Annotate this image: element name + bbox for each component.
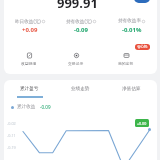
staticText: 昨日收益(元) [15,18,41,24]
button[interactable]: 我的定投 [110,53,142,66]
staticText: 交易记录 [68,61,84,66]
staticText: -0.09 [40,104,51,110]
button[interactable]: 净值估算 [106,86,157,96]
staticText: +0.00 [137,121,147,126]
button[interactable]: 持有收益(元) [55,18,106,34]
button[interactable]: 业绩走势 [55,86,106,96]
button[interactable]: 累计盈亏 [4,86,55,98]
button[interactable]: 收益明细 [13,53,45,66]
button[interactable]: 昨日收益(元) [4,18,55,34]
button[interactable]: 追加 [134,0,150,3]
staticText: -0.02 [7,121,16,126]
staticText: 累计收益 [17,104,36,110]
staticText: 收益明细 [21,61,37,66]
button[interactable]: 持有收益率 [106,18,157,34]
staticText: 省心投 [137,45,148,49]
staticText: 999.91 [57,0,98,12]
staticText: 持有收益(元) [66,18,92,24]
staticText: 持有收益率 [118,18,141,24]
staticText: -0.09 [74,26,88,34]
button[interactable]: 交易记录 [60,53,92,66]
staticText: -0.11 [7,133,16,138]
staticText: -0.19 [7,145,16,150]
staticText: -0.01% [122,26,142,34]
staticText: 业绩走势 [71,86,90,92]
staticText: 我的定投 [118,61,134,66]
staticText: 累计盈亏 [20,86,39,92]
staticText: +0.09 [22,26,38,34]
staticText: 净值估算 [122,86,141,92]
